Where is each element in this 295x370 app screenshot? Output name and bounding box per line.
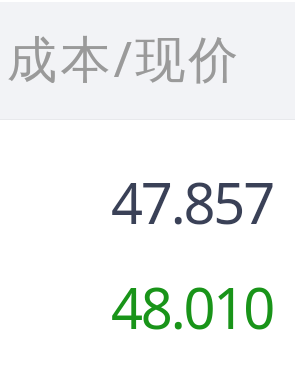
button[interactable]: 48.010 — [0, 269, 273, 345]
button[interactable]: 47.857 — [0, 164, 273, 240]
button[interactable]: 成本/现价 — [0, 2, 295, 119]
staticText: 成本/现价 — [7, 24, 242, 92]
